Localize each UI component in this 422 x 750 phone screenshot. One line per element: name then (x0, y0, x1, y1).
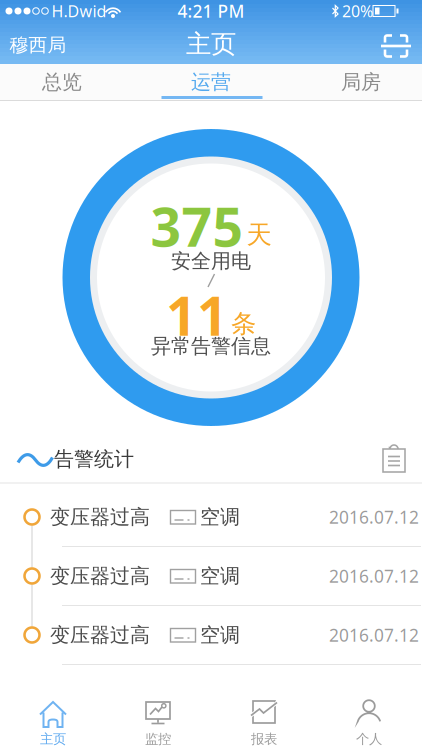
button[interactable] (0, 0, 422, 750)
button[interactable]: 主页 (0, 688, 105, 750)
staticText: 天 (246, 219, 271, 250)
staticText: 2016.07.12 (329, 505, 419, 528)
staticText: 总览 (42, 70, 82, 94)
staticText: 异常告警信息 (151, 334, 271, 358)
staticText: 375 (150, 191, 243, 261)
staticText: 安全用电 (171, 249, 251, 273)
staticText: 4:21 PM (177, 0, 244, 22)
staticText: 运营 (191, 70, 231, 94)
staticText: 主页 (186, 28, 236, 59)
staticText: 空调 (200, 623, 240, 647)
button[interactable]: 变压器过高 (0, 488, 422, 546)
staticText: 2016.07.12 (329, 623, 419, 646)
button[interactable]: 穆西局 (8, 28, 68, 62)
staticText: 穆西局 (9, 33, 66, 56)
button[interactable]: 变压器过高 (0, 547, 422, 605)
button[interactable]: 总览 (2, 63, 122, 100)
staticText: H.Dwid (51, 0, 106, 22)
staticText: 空调 (200, 505, 240, 529)
button[interactable] (0, 0, 422, 750)
staticText: 局房 (341, 70, 381, 94)
button[interactable]: 监控 (105, 688, 210, 750)
button[interactable]: 局房 (301, 63, 421, 100)
staticText: 变压器过高 (50, 505, 150, 529)
button[interactable]: 报表 (211, 688, 316, 750)
button[interactable]: 运营 (151, 63, 271, 100)
staticText: 20% (342, 0, 373, 22)
staticText: 变压器过高 (50, 623, 150, 647)
staticText: 空调 (200, 564, 240, 588)
staticText: 监控 (145, 731, 171, 747)
staticText: 11 (166, 280, 228, 350)
staticText: 报表 (251, 731, 277, 747)
staticText: 2016.07.12 (329, 564, 419, 587)
button[interactable]: 变压器过高 (0, 606, 422, 664)
staticText: 条 (231, 308, 256, 339)
button[interactable]: 个人 (316, 688, 421, 750)
staticText: 主页 (40, 731, 66, 747)
staticText: 个人 (356, 731, 382, 747)
staticText: 告警统计 (54, 447, 134, 471)
staticText: 变压器过高 (50, 564, 150, 588)
